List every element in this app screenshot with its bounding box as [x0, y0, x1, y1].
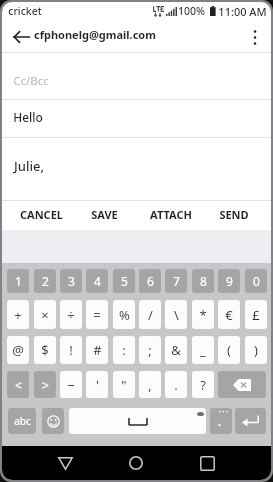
staticText: cfphonelg@gmail.com	[34, 27, 156, 42]
staticText: 2	[42, 273, 49, 289]
staticText: 7	[173, 273, 180, 289]
staticText: cricket	[8, 4, 42, 18]
button[interactable]: −	[60, 371, 82, 398]
button[interactable]: :	[113, 336, 135, 364]
staticText: Cc/Bcc	[13, 73, 49, 89]
button[interactable]: 1	[7, 269, 29, 293]
button[interactable]: Emoji	[42, 408, 64, 434]
button[interactable]: =	[86, 300, 108, 329]
staticText: *	[199, 306, 207, 324]
staticText: @	[12, 341, 24, 359]
button[interactable]: !	[60, 336, 82, 364]
button[interactable]: abc	[8, 408, 36, 434]
staticText: .	[174, 376, 178, 394]
button[interactable]: 0	[245, 269, 267, 293]
button[interactable]: ,	[139, 371, 161, 398]
button[interactable]: Backspace	[218, 371, 266, 398]
button[interactable]: 8	[192, 269, 214, 293]
staticText: 11:00 AM	[218, 4, 267, 19]
staticText: 100%	[178, 4, 205, 18]
button[interactable]: SAVE	[72, 200, 136, 229]
button[interactable]: \	[165, 300, 187, 329]
staticText: £	[252, 306, 260, 324]
button[interactable]: .	[165, 371, 187, 398]
staticText: )	[254, 341, 258, 359]
staticText: SAVE	[91, 207, 118, 222]
button[interactable]: ÷	[60, 300, 82, 329]
button[interactable]: Recents	[185, 446, 229, 480]
button[interactable]: /	[139, 300, 161, 329]
button[interactable]: 2	[34, 269, 56, 293]
button[interactable]: More options	[240, 22, 270, 52]
staticText: abc	[14, 414, 31, 428]
button[interactable]: Period	[210, 408, 232, 434]
staticText: ATTACH	[150, 207, 192, 222]
staticText: Julie,	[14, 157, 44, 175]
button[interactable]: 9	[218, 269, 240, 293]
button[interactable]: "	[113, 371, 135, 398]
staticText: $	[41, 341, 49, 359]
button[interactable]: #	[86, 336, 108, 364]
button[interactable]: ?	[192, 371, 214, 398]
staticText: ×	[41, 306, 49, 324]
staticText: '	[96, 376, 99, 394]
staticText: (	[227, 341, 231, 359]
button[interactable]: >	[34, 371, 56, 398]
button[interactable]: +	[7, 300, 29, 329]
button[interactable]	[2, 53, 271, 99]
staticText: 9	[226, 273, 233, 289]
button[interactable]: Back	[43, 446, 87, 480]
staticText: /	[148, 306, 153, 324]
staticText: \	[174, 306, 179, 324]
staticText: ?	[200, 376, 206, 394]
button[interactable]: €	[218, 300, 240, 329]
button[interactable]: Space	[69, 408, 206, 434]
staticText: "	[121, 376, 127, 394]
button[interactable]: CANCEL	[9, 200, 73, 229]
button[interactable]: SEND	[202, 200, 266, 229]
button[interactable]: 3	[60, 269, 82, 293]
button[interactable]: <	[7, 371, 29, 398]
staticText: !	[69, 341, 73, 359]
button[interactable]: )	[245, 336, 267, 364]
button[interactable]: 4	[86, 269, 108, 293]
staticText: €	[225, 306, 233, 324]
staticText: ;	[148, 341, 152, 359]
button[interactable]: ×	[34, 300, 56, 329]
staticText: 0	[253, 273, 260, 289]
staticText: %	[119, 306, 130, 324]
staticText: _	[200, 341, 206, 359]
button[interactable]: '	[86, 371, 108, 398]
button[interactable]: Home	[114, 446, 158, 480]
staticText: 4	[94, 273, 101, 289]
button[interactable]: &	[165, 336, 187, 364]
staticText: −	[67, 376, 75, 394]
staticText: &	[171, 341, 181, 359]
button[interactable]: (	[218, 336, 240, 364]
button[interactable]: _	[192, 336, 214, 364]
button[interactable]: %	[113, 300, 135, 329]
staticText: +	[14, 306, 22, 324]
button[interactable]: 7	[165, 269, 187, 293]
button[interactable]: Enter	[235, 408, 266, 434]
button[interactable]: ATTACH	[139, 200, 203, 229]
staticText: <	[15, 377, 22, 393]
staticText: >	[42, 377, 49, 393]
button[interactable]: £	[245, 300, 267, 329]
staticText: =	[93, 306, 101, 324]
button[interactable]	[2, 100, 271, 137]
button[interactable]: 5	[113, 269, 135, 293]
staticText: ÷	[67, 306, 75, 324]
staticText: Hello	[13, 109, 43, 125]
button[interactable]: $	[34, 336, 56, 364]
staticText: CANCEL	[20, 207, 63, 222]
button[interactable]: @	[7, 336, 29, 364]
staticText: ,	[148, 376, 152, 394]
button[interactable]: *	[192, 300, 214, 329]
button[interactable]: ;	[139, 336, 161, 364]
staticText: 6	[147, 273, 154, 289]
button[interactable]: 6	[139, 269, 161, 293]
button[interactable]	[2, 138, 271, 200]
button[interactable]: Back	[5, 22, 37, 52]
staticText: 3	[68, 273, 75, 289]
